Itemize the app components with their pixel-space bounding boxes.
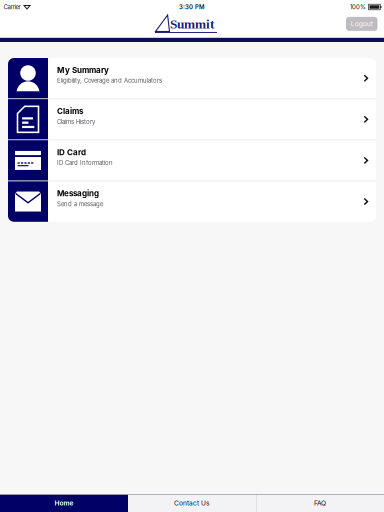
button[interactable]: My Summary (8, 58, 376, 99)
button[interactable]: Claims (8, 99, 376, 140)
staticText: Logout (351, 20, 373, 28)
staticText: Home (54, 499, 73, 507)
button[interactable]: ID Card (8, 140, 376, 181)
button[interactable]: Messaging (8, 181, 376, 222)
staticText: 3:30 PM (179, 3, 205, 11)
staticText: Claims History (57, 118, 95, 125)
staticText: Send a message (57, 200, 103, 208)
staticText: Carrier (3, 3, 20, 11)
button[interactable]: FAQ (256, 494, 384, 512)
staticText: Summit (170, 17, 214, 31)
staticText: Messaging (57, 188, 99, 198)
button[interactable]: Home (0, 494, 128, 512)
staticText: ID Card Information (57, 159, 113, 167)
staticText: Claims (57, 106, 83, 116)
staticText: Eligibility, Coverage and Accumulators (57, 77, 162, 84)
staticText: Contact Us (174, 499, 210, 507)
staticText: ID Card (57, 147, 86, 157)
button[interactable]: Logout (346, 17, 377, 31)
button[interactable]: Contact Us (128, 494, 256, 512)
staticText: FAQ (314, 499, 326, 507)
staticText: 100% (350, 3, 366, 11)
staticText: My Summary (57, 65, 109, 75)
